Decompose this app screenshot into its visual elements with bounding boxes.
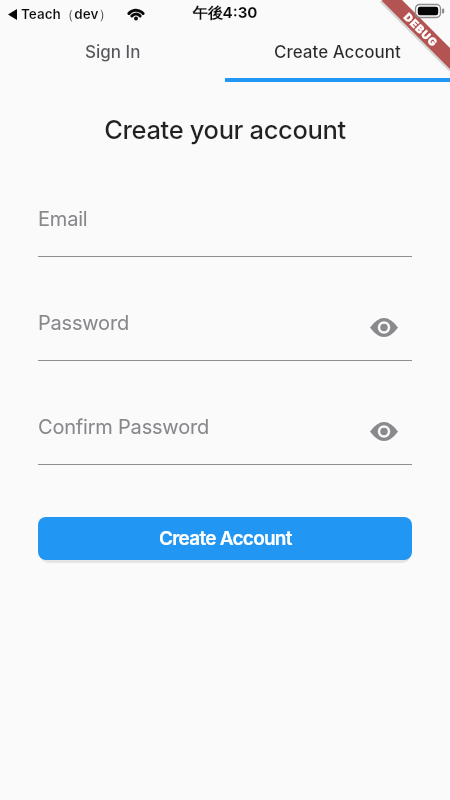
button[interactable] [368,313,400,341]
staticText: Password [38,311,129,335]
staticText: Email [38,207,88,231]
staticText: Create Account [159,527,292,550]
staticText: Sign In [85,42,141,63]
button[interactable]: Create Account [38,517,412,560]
button[interactable]: Password [38,307,412,361]
staticText: 午後4:30 [0,3,450,22]
staticText: Create Account [274,42,401,63]
staticText: Confirm Password [38,415,210,439]
button[interactable]: Create Account [225,25,450,79]
button[interactable] [368,417,400,445]
button[interactable]: Email [38,203,412,257]
button[interactable]: Confirm Password [38,411,412,465]
staticText: DEBUG [402,10,441,50]
staticText: Teach（dev） [21,6,112,23]
button[interactable]: Sign In [0,25,225,79]
staticText: Create your account [0,114,450,145]
